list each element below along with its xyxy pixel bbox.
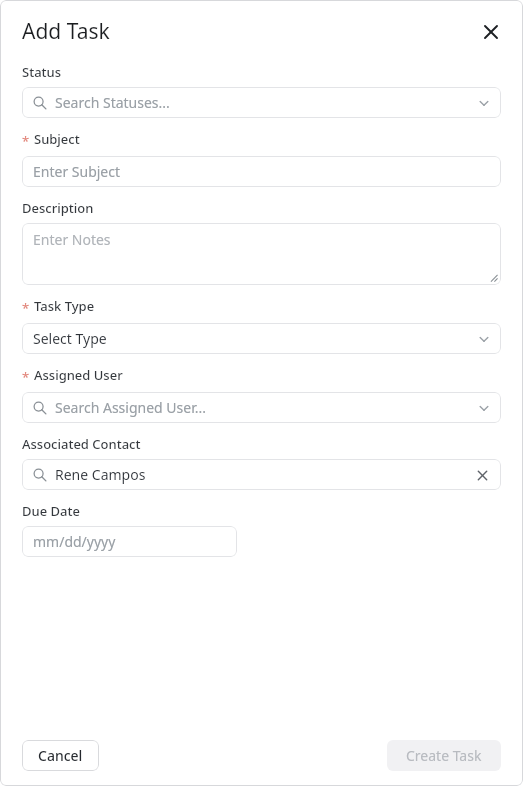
staticText: Cancel bbox=[38, 746, 83, 765]
staticText: Search Statuses... bbox=[55, 93, 170, 112]
staticText: * bbox=[22, 132, 30, 150]
button[interactable]: Create Task bbox=[387, 740, 501, 771]
button[interactable]: Search Assigned User... bbox=[22, 392, 501, 423]
staticText: Due Date bbox=[22, 502, 80, 520]
button[interactable]: Clear contact bbox=[474, 467, 490, 483]
button[interactable]: Search Statuses... bbox=[22, 87, 501, 118]
staticText: Enter Subject bbox=[33, 162, 121, 181]
staticText: Associated Contact bbox=[22, 435, 141, 453]
button[interactable]: Select Type bbox=[22, 323, 501, 354]
staticText: Rene Campos bbox=[55, 465, 146, 484]
staticText: mm/dd/yyyy bbox=[33, 532, 116, 551]
staticText: Status bbox=[22, 63, 62, 81]
staticText: Subject bbox=[34, 130, 80, 148]
staticText: * bbox=[22, 368, 30, 386]
staticText: Description bbox=[22, 199, 94, 217]
button[interactable]: Enter Subject bbox=[22, 156, 501, 187]
staticText: Select Type bbox=[33, 329, 107, 348]
staticText: * bbox=[22, 299, 30, 317]
staticText: Task Type bbox=[34, 297, 95, 315]
button[interactable]: Enter Notes bbox=[22, 223, 501, 285]
button[interactable]: Rene Campos bbox=[22, 459, 501, 490]
staticText: Enter Notes bbox=[33, 230, 111, 249]
button[interactable]: Close bbox=[478, 19, 504, 45]
staticText: Search Assigned User... bbox=[55, 398, 206, 417]
button[interactable]: mm/dd/yyyy bbox=[22, 526, 237, 557]
button[interactable]: Cancel bbox=[22, 740, 99, 771]
staticText: Create Task bbox=[406, 746, 482, 765]
staticText: Assigned User bbox=[34, 366, 123, 384]
staticText: Add Task bbox=[22, 17, 110, 46]
